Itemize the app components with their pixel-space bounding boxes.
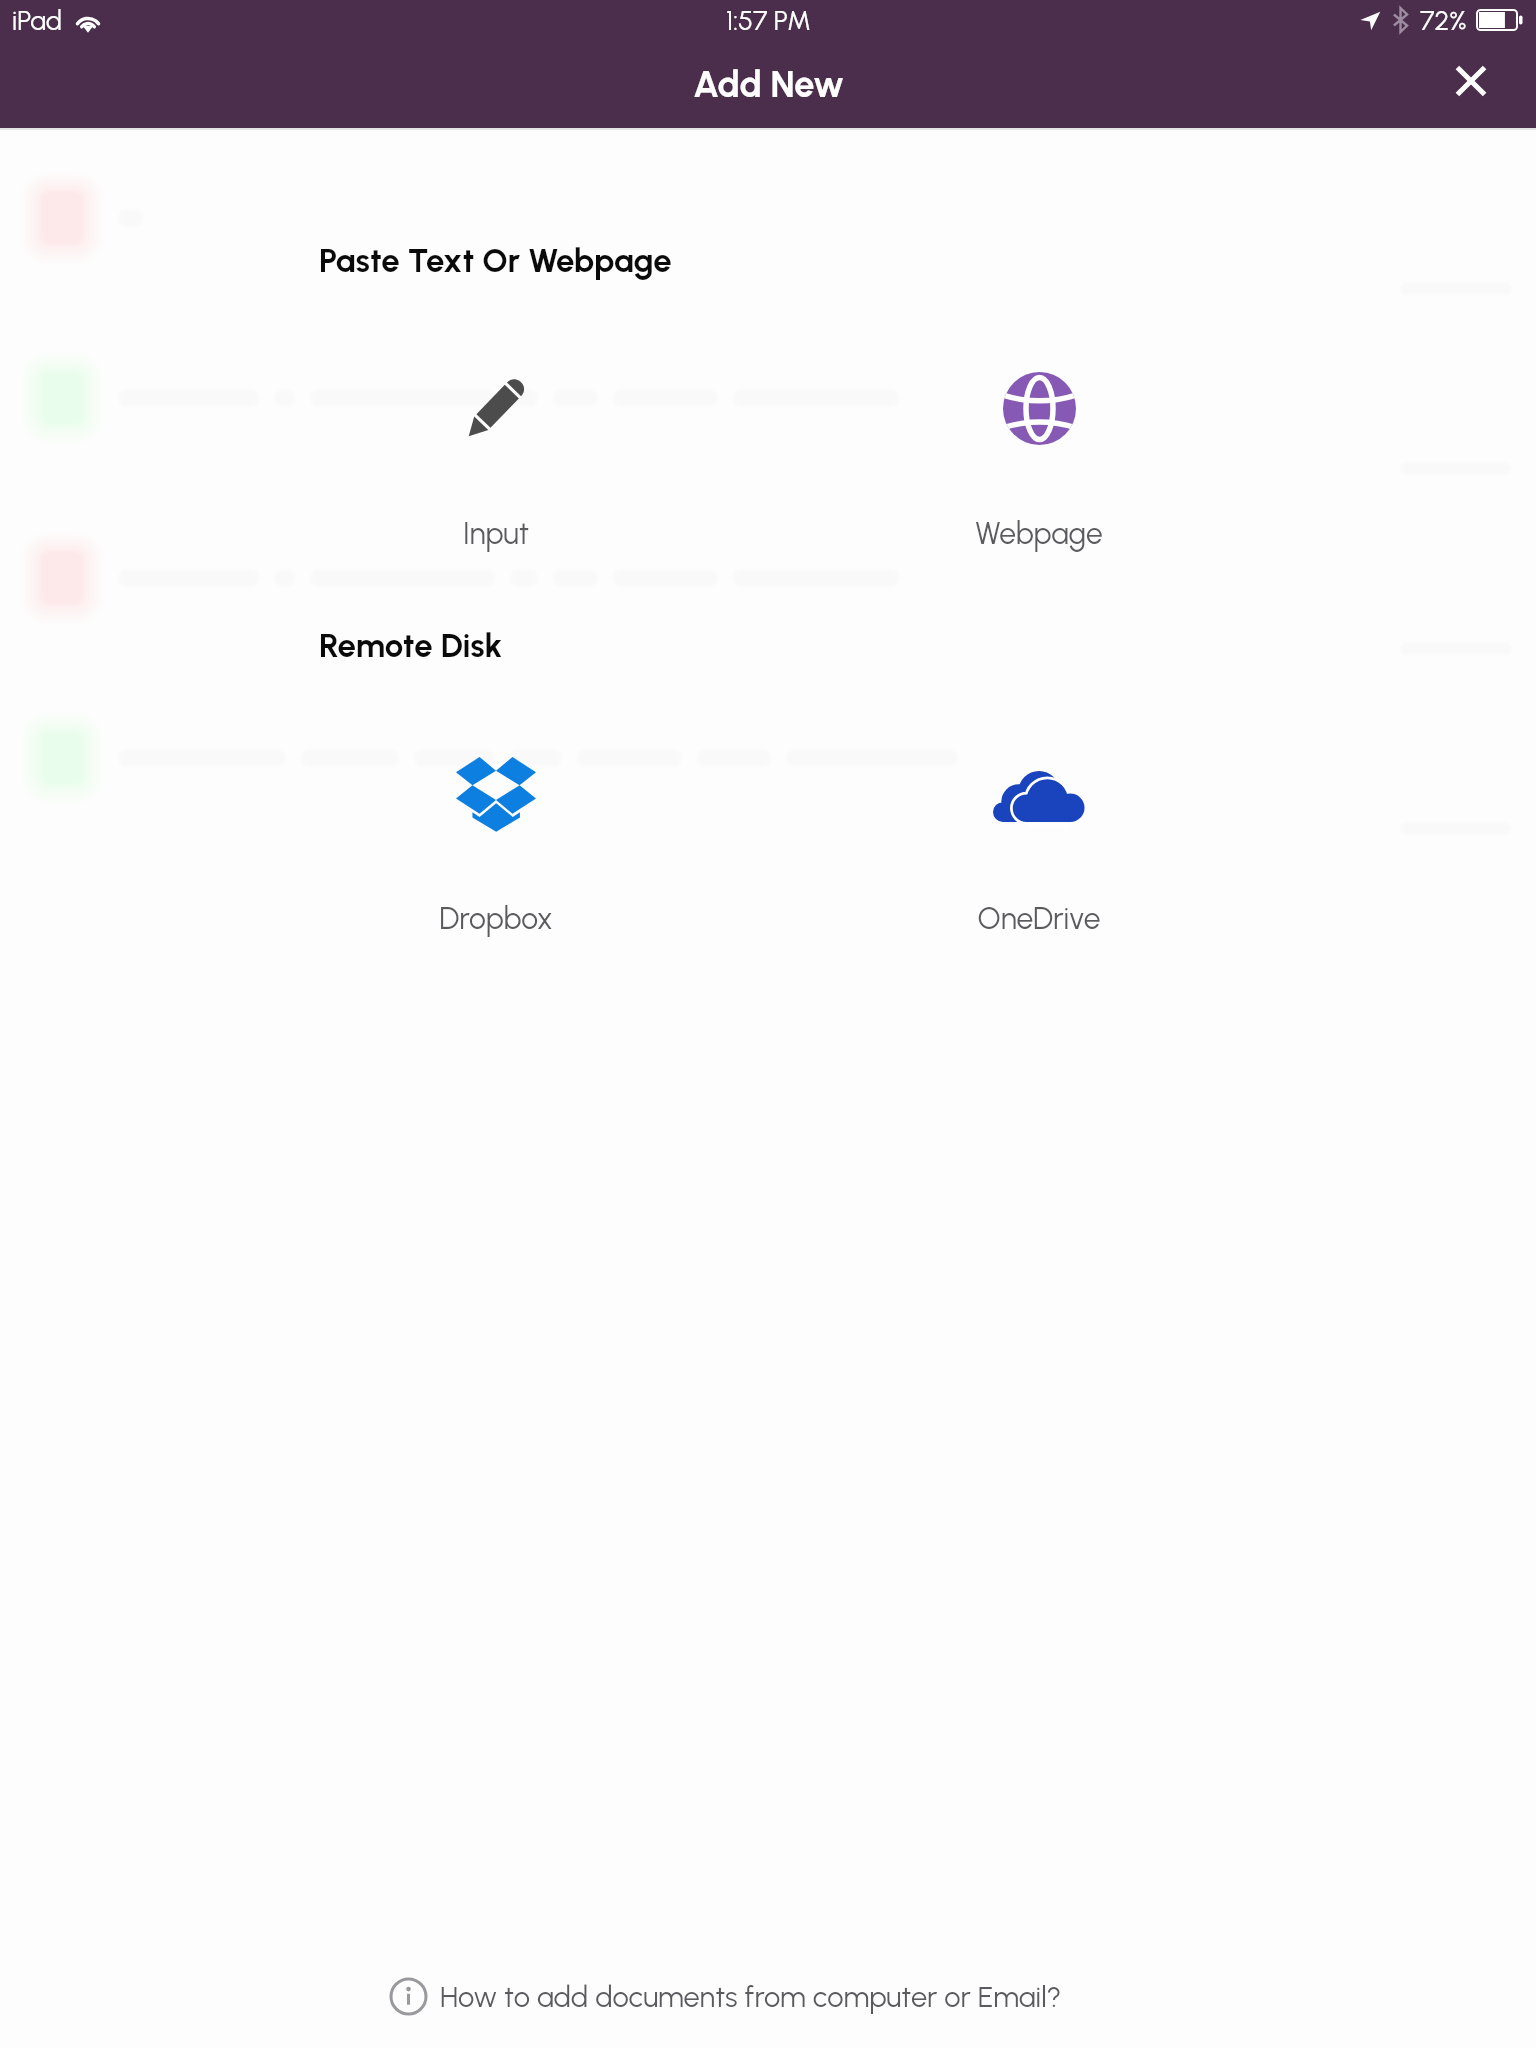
button[interactable]: Close [1437,47,1505,115]
button[interactable]: Dropbox [344,708,648,959]
staticText: 72% [1420,4,1467,36]
staticText: How to add documents from computer or Em… [440,1979,1062,2014]
staticText: Paste Text Or Webpage [319,241,672,281]
staticText: Add New [693,63,844,106]
button[interactable]: Webpage [887,322,1191,574]
staticText: Remote Disk [319,626,503,666]
staticText: Webpage [887,515,1191,551]
staticText: Dropbox [344,900,648,936]
button[interactable]: Input [344,322,648,574]
staticText: Input [344,515,648,551]
staticText: OneDrive [887,900,1191,936]
staticText: iPad [12,4,62,36]
button[interactable]: How to add documents from computer or Em… [379,1965,1072,2028]
button[interactable]: OneDrive [887,708,1191,959]
staticText: 1:57 PM [726,4,811,36]
